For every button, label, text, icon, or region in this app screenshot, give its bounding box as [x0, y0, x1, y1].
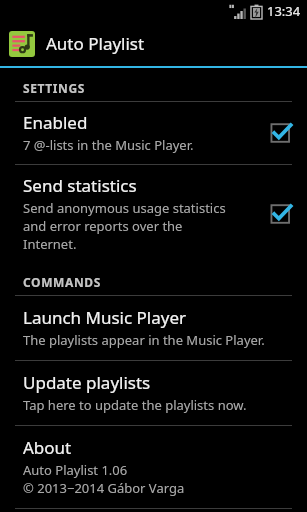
staticText: Send anonymous usage statistics: [23, 199, 226, 217]
staticText: COMMANDS: [23, 274, 101, 290]
other: Toggle: [267, 118, 297, 148]
staticText: Update playlists: [23, 371, 151, 394]
button[interactable]: Enabled: [0, 102, 307, 164]
staticText: Tap here to update the playlists now.: [23, 396, 247, 414]
staticText: 7 @-lists in the Music Player.: [23, 136, 194, 154]
button[interactable]: Launch Music Player: [0, 296, 307, 360]
staticText: Enabled: [23, 111, 88, 134]
other: Toggle: [267, 199, 297, 229]
staticText: Send statistics: [23, 174, 137, 197]
staticText: 13:34: [267, 2, 301, 20]
button[interactable]: Send statistics: [0, 165, 307, 263]
button[interactable]: Update playlists: [0, 361, 307, 425]
staticText: Auto Playlist: [46, 32, 145, 55]
staticText: About: [23, 436, 72, 459]
staticText: Auto Playlist 1.06: [23, 461, 128, 479]
staticText: © 2013−2014 Gábor Varga: [23, 479, 185, 497]
staticText: The playlists appear in the Music Player…: [23, 331, 265, 349]
staticText: Launch Music Player: [23, 306, 187, 329]
staticText: SETTINGS: [23, 80, 85, 96]
other: Auto Playlist app icon: [9, 31, 35, 57]
staticText: and error reports over the: [23, 217, 183, 235]
button[interactable]: About: [0, 426, 307, 508]
staticText: Internet.: [23, 235, 77, 253]
